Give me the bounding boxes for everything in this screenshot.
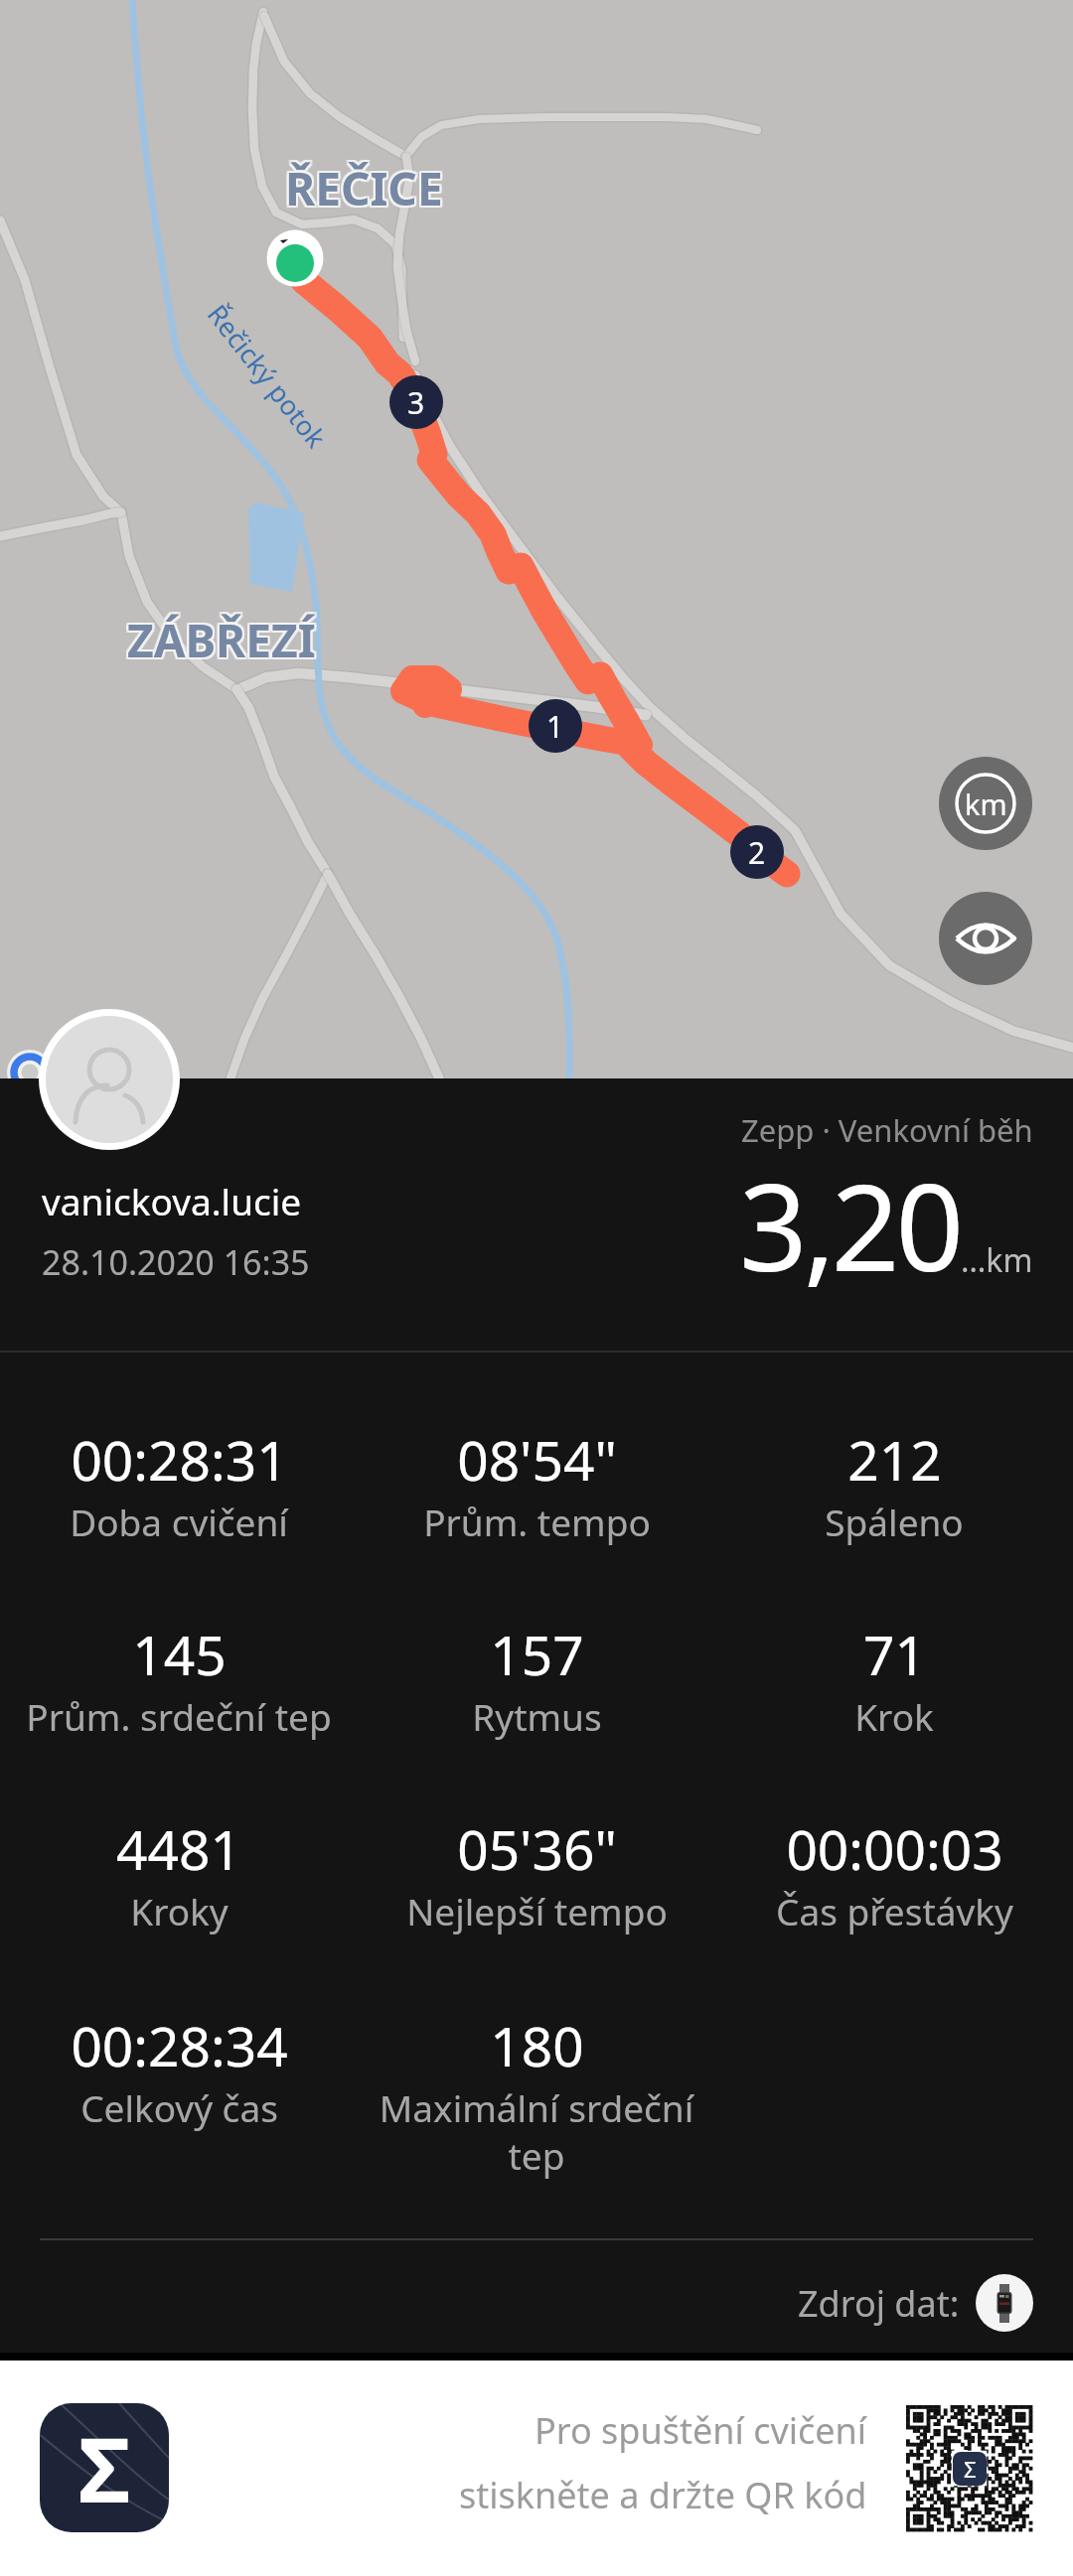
staticText: ZÁBŘEZÍ <box>129 607 318 669</box>
staticText: ZÁBŘEZÍ <box>125 611 314 673</box>
staticText: km <box>965 785 1007 823</box>
staticText: 00:28:31 <box>71 1422 288 1497</box>
staticText: Doba cvičení <box>70 1497 288 1546</box>
staticText: ŘEČICE <box>285 157 443 219</box>
staticText: 71 <box>863 1617 926 1691</box>
staticText: Pro spuštění cvičení <box>535 2406 867 2455</box>
staticText: 212 <box>847 1422 942 1497</box>
staticText: ZÁBŘEZÍ <box>129 609 318 671</box>
staticText: ZÁBŘEZÍ <box>127 611 316 673</box>
staticText: Maximální srdeční tep <box>366 2082 707 2181</box>
staticText: Prům. tempo <box>423 1497 651 1546</box>
staticText: ŘEČICE <box>285 155 443 217</box>
staticText: ŘEČICE <box>287 155 445 217</box>
staticText: Rytmus <box>472 1691 602 1741</box>
staticText: Řečický potok <box>200 297 335 455</box>
staticText: …km <box>961 1238 1033 1282</box>
staticText: Σ <box>78 2407 131 2529</box>
staticText: Nejlepší tempo <box>406 1886 668 1935</box>
button[interactable]: Zepp app <box>40 2403 169 2532</box>
staticText: ŘEČICE <box>285 159 443 221</box>
staticText: 28.10.2020 16:35 <box>42 1239 310 1285</box>
staticText: 1 <box>546 706 564 747</box>
staticText: 08'54" <box>457 1422 617 1497</box>
staticText: Prům. srdeční tep <box>26 1691 332 1741</box>
staticText: Zepp · Venkovní běh <box>741 1109 1033 1151</box>
staticText: ZÁBŘEZÍ <box>127 609 316 671</box>
staticText: 00:00:03 <box>786 1811 1003 1886</box>
staticText: ZÁBŘEZÍ <box>127 607 316 669</box>
staticText: ZÁBŘEZÍ <box>125 607 314 669</box>
staticText: ZÁBŘEZÍ <box>129 611 318 673</box>
staticText: 2 <box>748 832 766 873</box>
staticText: ŘEČICE <box>283 159 441 221</box>
staticText: stiskněte a držte QR kód <box>459 2471 867 2519</box>
button[interactable]: Profile <box>39 1009 180 1150</box>
staticText: 3 <box>407 382 425 423</box>
staticText: Celkový čas <box>80 2082 278 2132</box>
staticText: 4481 <box>116 1811 241 1886</box>
staticText: Kroky <box>130 1886 229 1935</box>
staticText: 3,20 <box>739 1144 961 1306</box>
staticText: vanickova.lucie <box>42 1176 302 1225</box>
staticText: ŘEČICE <box>283 155 441 217</box>
staticText: 00:28:34 <box>71 2008 288 2082</box>
staticText: 157 <box>490 1617 584 1691</box>
staticText: Spáleno <box>825 1497 964 1546</box>
button[interactable]: Toggle visibility <box>939 892 1032 985</box>
button[interactable]: QR code <box>906 2405 1032 2531</box>
staticText: Krok <box>854 1691 934 1741</box>
staticText: 05'36" <box>457 1811 617 1886</box>
staticText: Σ <box>964 2454 977 2484</box>
staticText: ŘEČICE <box>287 159 445 221</box>
staticText: 145 <box>132 1617 227 1691</box>
staticText: Čas přestávky <box>776 1886 1013 1935</box>
button[interactable]: Units <box>939 757 1032 850</box>
staticText: Zdroj dat: <box>798 2279 960 2328</box>
staticText: 180 <box>490 2008 584 2082</box>
staticText: ŘEČICE <box>287 157 445 219</box>
staticText: ŘEČICE <box>283 157 441 219</box>
staticText: ZÁBŘEZÍ <box>125 609 314 671</box>
